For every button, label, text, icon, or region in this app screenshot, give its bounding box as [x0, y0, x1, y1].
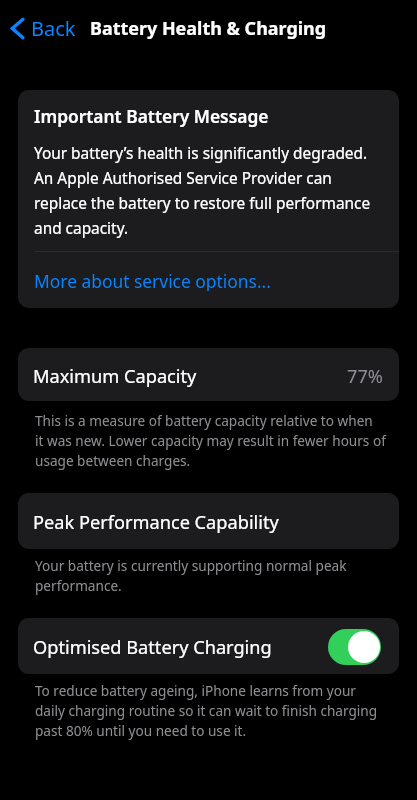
button[interactable]: Maximum Capacity: [18, 348, 399, 401]
staticText: Maximum Capacity: [33, 364, 197, 389]
button[interactable]: Back: [0, 7, 82, 50]
button[interactable]: Optimised Battery Charging: [328, 629, 381, 665]
staticText: 77%: [347, 364, 383, 389]
staticText: Important Battery Message: [34, 104, 269, 128]
button[interactable]: More about service options...: [18, 252, 399, 291]
staticText: This is a measure of battery capacity re…: [35, 410, 386, 470]
staticText: Back: [31, 15, 76, 42]
staticText: More about service options...: [34, 269, 271, 291]
button[interactable]: Optimised Battery Charging: [18, 618, 399, 674]
staticText: Peak Performance Capability: [33, 510, 279, 535]
staticText: To reduce battery ageing, iPhone learns …: [35, 680, 378, 740]
staticText: Battery Health & Charging: [90, 16, 327, 40]
staticText: Optimised Battery Charging: [33, 635, 272, 660]
staticText: Your battery’s health is significantly d…: [34, 139, 371, 239]
staticText: Your battery is currently supporting nor…: [35, 555, 347, 595]
button[interactable]: Peak Performance Capability: [18, 493, 399, 549]
